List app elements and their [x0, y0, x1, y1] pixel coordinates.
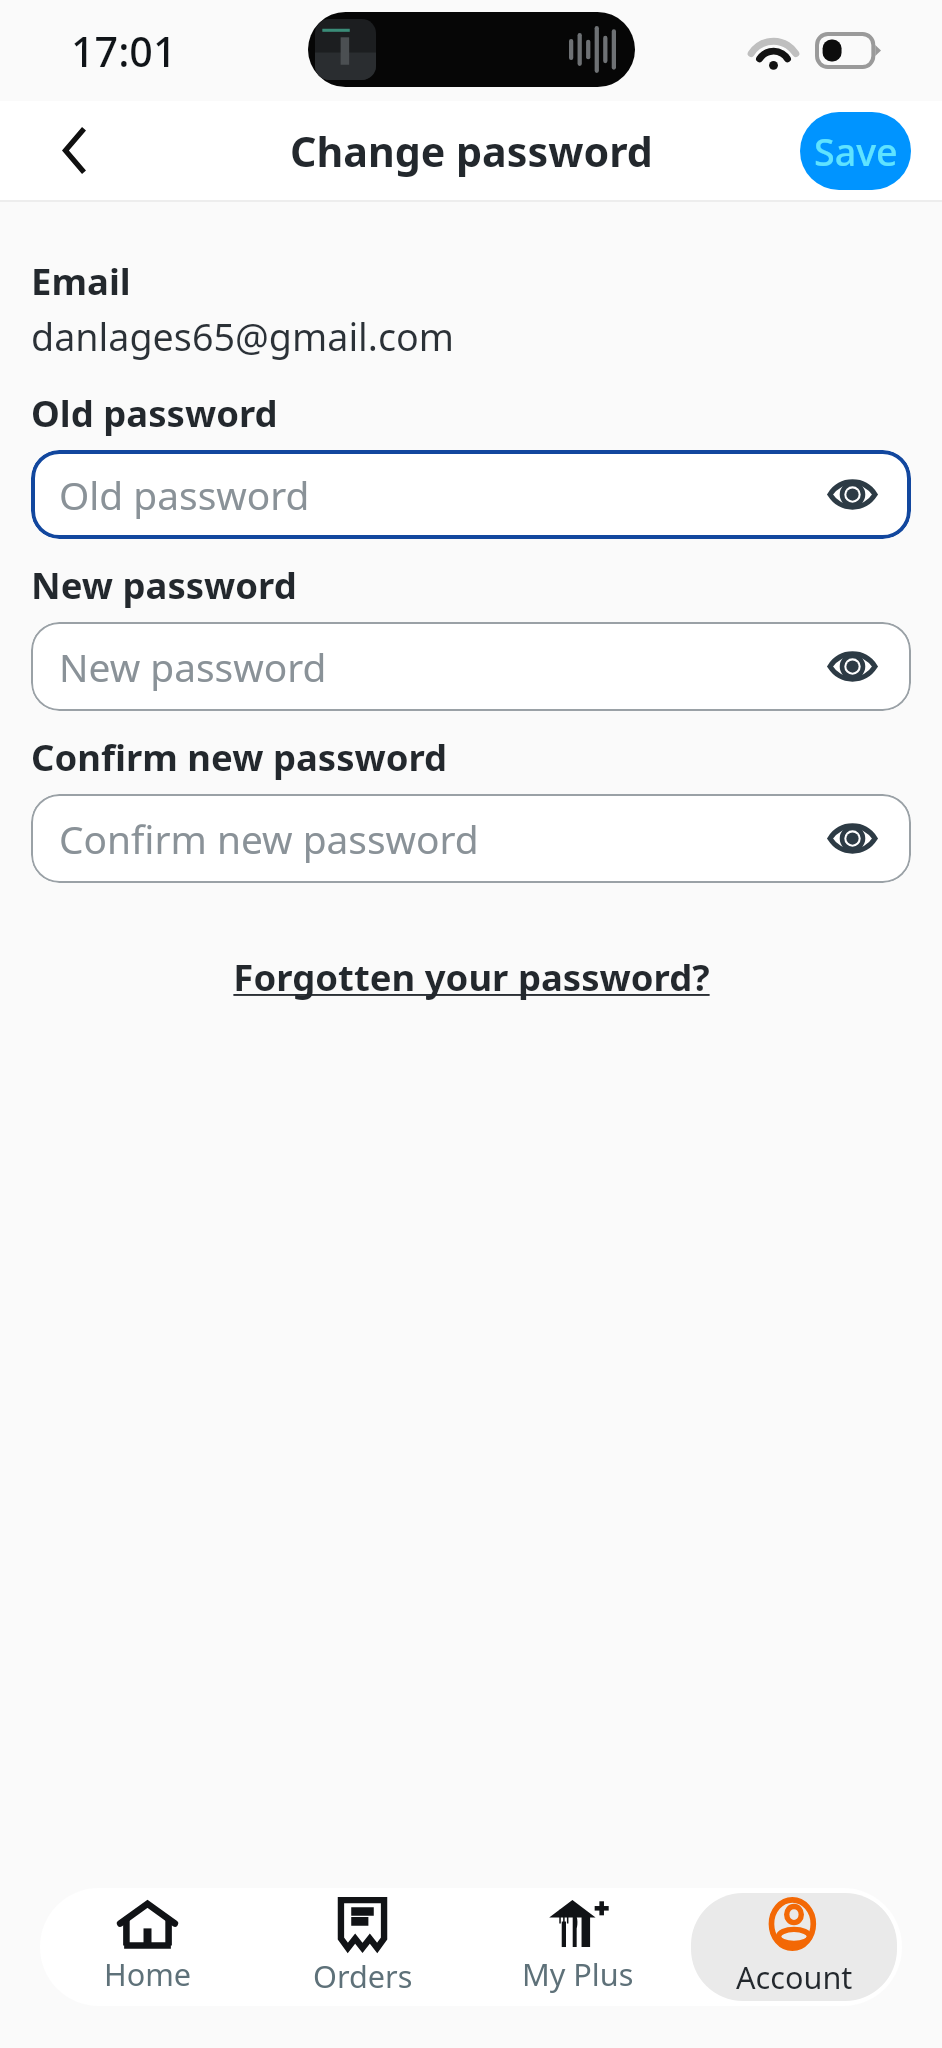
staticText: My Plus: [522, 1953, 634, 1995]
button[interactable]: Show password: [822, 808, 883, 869]
staticText: Change password: [290, 123, 653, 179]
button[interactable]: Show password: [822, 464, 883, 525]
staticText: New password: [59, 640, 327, 693]
staticText: Forgotten your password?: [233, 952, 710, 1002]
button[interactable]: Home: [45, 1893, 250, 2001]
staticText: Old password: [31, 388, 278, 438]
button[interactable]: Forgotten your password?: [219, 947, 724, 1007]
staticText: New password: [31, 560, 297, 610]
staticText: Email: [31, 256, 131, 306]
button[interactable]: Orders: [260, 1893, 465, 2001]
button[interactable]: Account: [691, 1893, 897, 2001]
staticText: Home: [104, 1953, 192, 1995]
button[interactable]: Old password: [31, 450, 911, 539]
button[interactable]: Back: [31, 108, 116, 193]
staticText: Old password: [59, 468, 310, 521]
button[interactable]: My Plus: [475, 1893, 681, 2001]
staticText: danlages65@gmail.com: [31, 311, 455, 362]
button[interactable]: Save: [800, 112, 911, 190]
button[interactable]: Show password: [822, 636, 883, 697]
staticText: Save: [814, 126, 898, 177]
staticText: Confirm new password: [31, 732, 448, 782]
staticText: 17:01: [71, 23, 177, 79]
button[interactable]: New password: [31, 622, 911, 711]
staticText: Confirm new password: [59, 812, 479, 865]
staticText: Account: [736, 1956, 853, 1998]
button[interactable]: Confirm new password: [31, 794, 911, 883]
staticText: Orders: [313, 1955, 413, 1997]
